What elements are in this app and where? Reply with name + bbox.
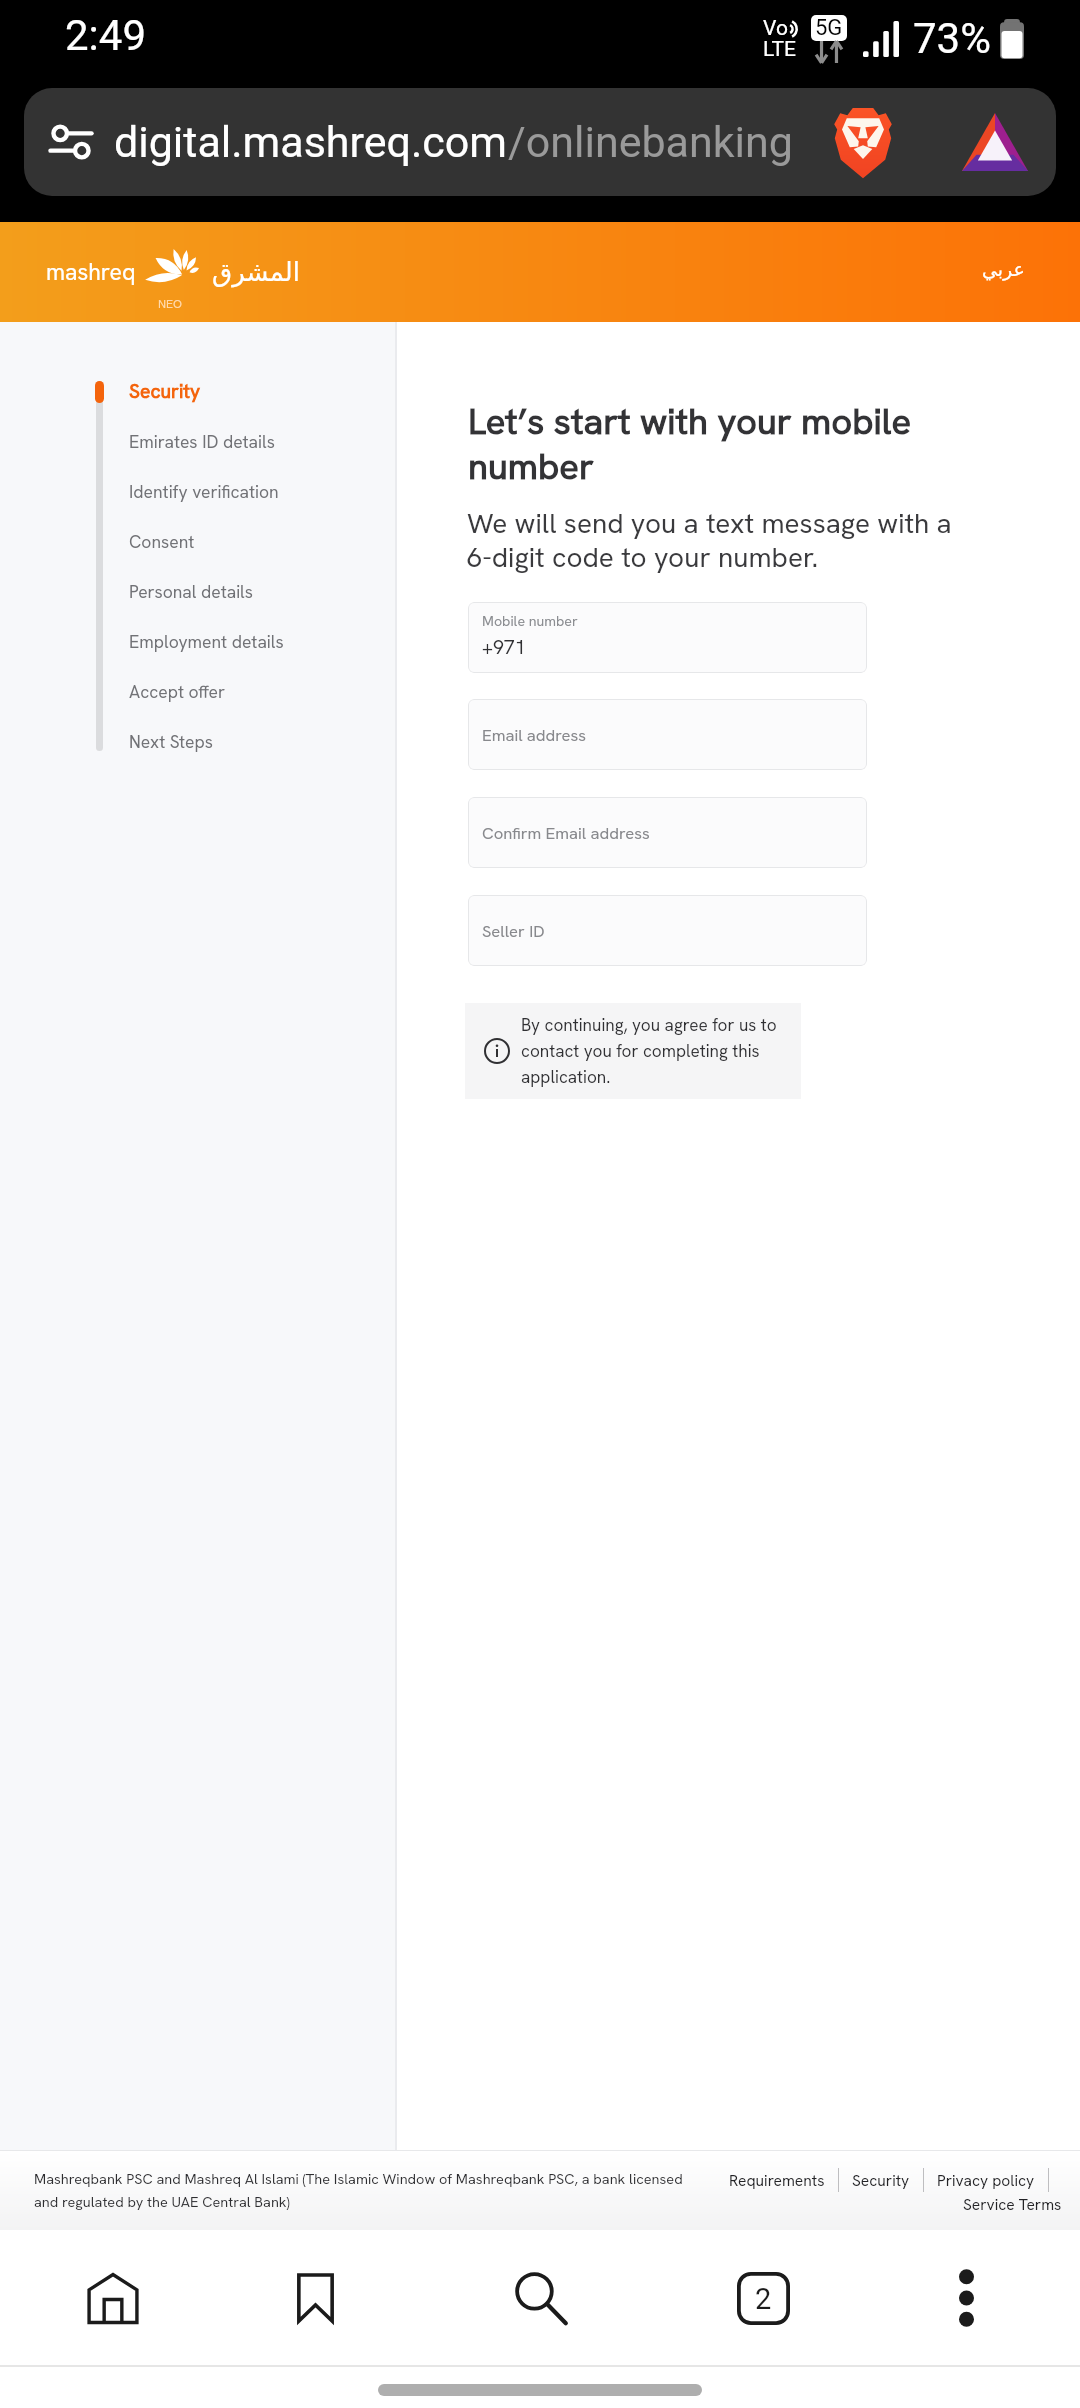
button[interactable]: Emirates ID details	[0, 416, 395, 466]
staticText: 2	[755, 2282, 772, 2316]
staticText: digital.mashreq.com	[114, 117, 508, 167]
button[interactable]: Email address	[468, 699, 867, 770]
button[interactable]: Accept offer	[0, 666, 395, 716]
button[interactable]: Brave Rewards	[957, 104, 1033, 180]
staticText: Accept offer	[129, 680, 226, 703]
staticText: Consent	[129, 530, 195, 553]
staticText: Service Terms	[963, 2194, 1062, 2214]
staticText: Identify verification	[129, 480, 279, 503]
button[interactable]: Site settings	[44, 115, 98, 169]
staticText: mashreq	[46, 257, 136, 287]
staticText: Email address	[482, 724, 587, 746]
staticText: Next Steps	[129, 730, 213, 753]
staticText: Emirates ID details	[129, 430, 275, 453]
button[interactable]: Requirements	[729, 2170, 825, 2190]
staticText: Vo	[763, 16, 788, 41]
button[interactable]: Next Steps	[0, 716, 395, 766]
button[interactable]: Bookmarks	[255, 2238, 375, 2358]
button[interactable]: Security	[0, 366, 395, 416]
button[interactable]: Consent	[0, 516, 395, 566]
button[interactable]: Search	[480, 2238, 600, 2358]
button[interactable]: Seller ID	[468, 895, 867, 966]
button[interactable]: Home	[53, 2238, 173, 2358]
staticText: We will send you a text message with a 6…	[467, 505, 962, 576]
staticText: Privacy policy	[937, 2170, 1035, 2190]
staticText: Let’s start with your mobile number	[468, 398, 930, 490]
button[interactable]: Employment details	[0, 616, 395, 666]
staticText: Mashreqbank PSC and Mashreq Al Islami (T…	[34, 2169, 683, 2212]
button[interactable]: By continuing, you agree for us to conta…	[465, 1003, 801, 1099]
staticText: /onlinebanking	[508, 117, 793, 167]
button[interactable]: Brave Shields	[825, 104, 901, 180]
staticText: LTE	[763, 37, 796, 62]
staticText: Security	[129, 379, 201, 404]
button[interactable]: More options	[906, 2238, 1026, 2358]
button[interactable]: Service Terms	[963, 2194, 1062, 2214]
staticText: Employment details	[129, 630, 284, 653]
staticText: By continuing, you agree for us to conta…	[521, 1014, 783, 1088]
staticText: Requirements	[729, 2170, 825, 2190]
staticText: 2:49	[65, 11, 146, 60]
staticText: Security	[852, 2170, 910, 2190]
button[interactable]: Security	[852, 2170, 910, 2190]
button[interactable]: Mobile number	[468, 602, 867, 673]
staticText: 73%	[913, 14, 991, 63]
button[interactable]: Privacy policy	[937, 2170, 1035, 2190]
staticText: Confirm Email address	[482, 822, 650, 844]
staticText: Personal details	[129, 580, 253, 603]
button[interactable]: Personal details	[0, 566, 395, 616]
staticText: عربي	[982, 258, 1025, 280]
button[interactable]: Site settings	[24, 88, 1056, 196]
button[interactable]: Tabs	[703, 2238, 823, 2358]
staticText: +971	[482, 634, 526, 659]
staticText: 5G	[815, 15, 843, 41]
staticText: NEO	[158, 296, 183, 312]
button[interactable]: Confirm Email address	[468, 797, 867, 868]
staticText: Seller ID	[482, 920, 545, 942]
button[interactable]: Identify verification	[0, 466, 395, 516]
button[interactable]: عربي	[982, 258, 1025, 280]
staticText: Mobile number	[482, 612, 578, 631]
staticText: المشرق	[212, 257, 300, 287]
button[interactable]: mashreq NEO	[46, 252, 300, 292]
